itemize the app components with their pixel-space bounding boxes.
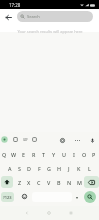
staticText: Y bbox=[52, 151, 56, 158]
staticText: Q bbox=[2, 151, 7, 158]
staticText: F bbox=[38, 165, 41, 172]
button[interactable]: M bbox=[74, 175, 84, 189]
button[interactable]: K bbox=[74, 161, 84, 175]
button[interactable]: Back bbox=[1, 10, 15, 24]
staticText: K bbox=[77, 165, 81, 172]
button[interactable]: Emoji bbox=[19, 191, 30, 202]
staticText: ?123 bbox=[3, 195, 12, 200]
staticText: P bbox=[92, 151, 96, 158]
button[interactable]: N bbox=[64, 175, 74, 189]
button[interactable]: T bbox=[39, 147, 49, 161]
staticText: W bbox=[11, 151, 17, 158]
button[interactable]: G bbox=[44, 161, 54, 175]
button[interactable]: Z bbox=[15, 175, 24, 189]
button[interactable]: More options bbox=[73, 136, 81, 144]
button[interactable]: W bbox=[9, 147, 19, 161]
button[interactable]: Back bbox=[21, 207, 33, 219]
button[interactable]: L bbox=[84, 161, 94, 175]
staticText: A bbox=[8, 165, 12, 172]
button[interactable]: Stickers bbox=[31, 136, 38, 143]
button[interactable]: R bbox=[29, 147, 39, 161]
staticText: Z bbox=[18, 179, 22, 186]
button[interactable]: F bbox=[34, 161, 44, 175]
button[interactable]: P bbox=[89, 147, 99, 161]
button[interactable]: Y bbox=[49, 147, 59, 161]
button[interactable]: U bbox=[59, 147, 69, 161]
button[interactable]: X bbox=[24, 175, 34, 189]
button[interactable]: Settings bbox=[58, 136, 66, 144]
button[interactable]: Backspace bbox=[84, 176, 99, 188]
button[interactable]: E bbox=[19, 147, 29, 161]
staticText: O bbox=[82, 151, 87, 158]
button[interactable]: ?123 bbox=[1, 192, 14, 202]
button[interactable]: I bbox=[69, 147, 79, 161]
button[interactable]: C bbox=[34, 175, 44, 189]
staticText: U bbox=[62, 151, 66, 158]
staticText: GIF bbox=[23, 138, 28, 142]
button[interactable]: D bbox=[24, 161, 34, 175]
button[interactable]: Home bbox=[43, 207, 55, 219]
staticText: C bbox=[37, 179, 41, 186]
button[interactable]: Google search bbox=[1, 136, 8, 143]
button[interactable]: S bbox=[14, 161, 24, 175]
staticText: G bbox=[47, 165, 51, 172]
button[interactable]: O bbox=[79, 147, 89, 161]
staticText: J bbox=[68, 165, 70, 172]
button[interactable]: B bbox=[54, 175, 64, 189]
button[interactable]: A bbox=[5, 161, 14, 175]
staticText: L bbox=[88, 165, 91, 172]
button[interactable] bbox=[72, 191, 81, 202]
staticText: R bbox=[32, 151, 36, 158]
staticText: N bbox=[67, 179, 72, 186]
button[interactable]: Q bbox=[0, 147, 9, 161]
staticText: E bbox=[22, 151, 26, 158]
staticText: S bbox=[18, 165, 21, 172]
staticText: M bbox=[77, 179, 82, 186]
button[interactable]: V bbox=[44, 175, 54, 189]
staticText: 17:28 bbox=[9, 2, 21, 8]
staticText: B bbox=[57, 179, 61, 186]
button[interactable]: Clipboard bbox=[12, 136, 19, 143]
staticText: Your search results will appear here bbox=[17, 29, 83, 34]
button[interactable]: Search bbox=[84, 191, 96, 203]
staticText: H bbox=[57, 165, 62, 172]
button[interactable]: H bbox=[54, 161, 64, 175]
staticText: I bbox=[73, 151, 75, 158]
button[interactable]: Voice input bbox=[88, 136, 96, 144]
staticText: V bbox=[47, 179, 51, 186]
staticText: D bbox=[27, 165, 31, 172]
button[interactable]: Recent apps bbox=[65, 207, 77, 219]
staticText: T bbox=[42, 151, 46, 158]
button[interactable]: Shift bbox=[1, 176, 13, 188]
button[interactable]: J bbox=[64, 161, 74, 175]
button[interactable]: GIF bbox=[21, 136, 29, 144]
staticText: X bbox=[27, 179, 31, 186]
button[interactable]: Search bbox=[17, 11, 93, 22]
staticText: Search bbox=[27, 14, 40, 19]
